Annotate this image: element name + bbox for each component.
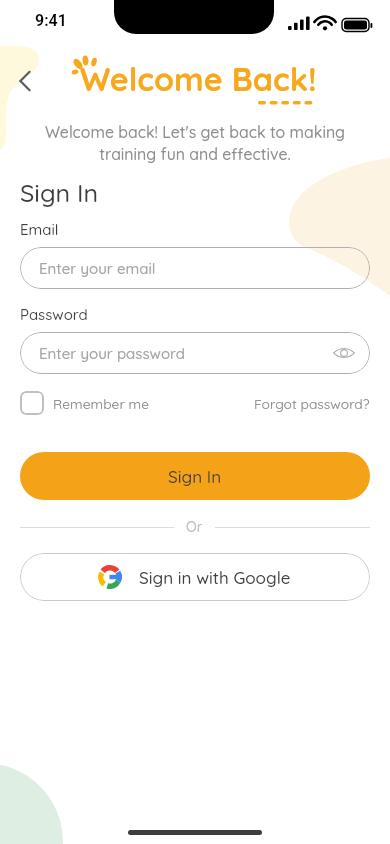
staticText: Sign In xyxy=(168,466,222,487)
staticText: Welcome Back! xyxy=(80,59,317,99)
staticText: Remember me xyxy=(53,395,150,412)
staticText: Forgot password? xyxy=(254,395,370,412)
staticText: Password xyxy=(20,305,88,324)
button[interactable]: Back xyxy=(5,61,45,101)
staticText: 9:41 xyxy=(35,11,67,30)
staticText: Enter your email xyxy=(39,259,156,278)
staticText: Or xyxy=(186,518,203,536)
button[interactable]: Sign in with Google xyxy=(20,553,370,601)
staticText: Welcome back! Let's get back to making t… xyxy=(20,122,370,164)
staticText: Enter your password xyxy=(39,344,185,363)
staticText: Email xyxy=(20,220,59,239)
button[interactable]: Enter your email xyxy=(20,247,370,289)
staticText: Sign in with Google xyxy=(139,567,291,588)
staticText: Sign In xyxy=(20,177,99,208)
button[interactable]: Enter your password xyxy=(20,332,370,374)
button[interactable]: Forgot password? xyxy=(254,395,370,412)
button[interactable]: Sign In xyxy=(20,452,370,500)
button[interactable]: Remember me xyxy=(20,391,150,415)
button[interactable]: Show password xyxy=(331,340,357,366)
